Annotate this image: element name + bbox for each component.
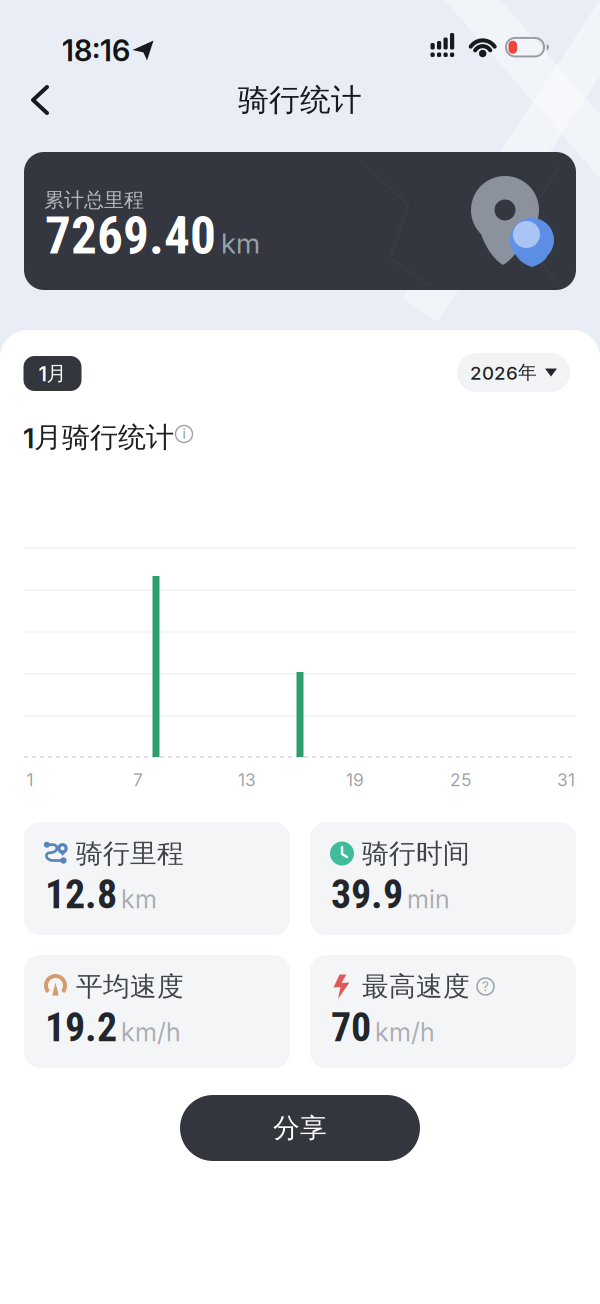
staticText: 累计总里程 bbox=[44, 188, 144, 212]
staticText: 18:16 bbox=[62, 33, 130, 68]
staticText: 39.9 bbox=[331, 871, 403, 918]
staticText: 70 bbox=[331, 1004, 371, 1051]
staticText: 12.8 bbox=[45, 871, 117, 918]
staticText: 19.2 bbox=[45, 1004, 117, 1051]
staticText: km/h bbox=[375, 1017, 435, 1047]
staticText: 1 bbox=[26, 770, 33, 790]
staticText: km/h bbox=[121, 1017, 181, 1047]
staticText: 25 bbox=[450, 770, 472, 790]
button[interactable]: Help bbox=[477, 978, 494, 995]
button[interactable]: 2026年 bbox=[457, 353, 570, 392]
staticText: 2026年 bbox=[470, 361, 537, 384]
button[interactable]: 分享 bbox=[180, 1095, 420, 1161]
staticText: ? bbox=[482, 979, 489, 994]
staticText: 骑行时间 bbox=[362, 837, 470, 870]
staticText: 31 bbox=[557, 770, 575, 790]
staticText: 1月 bbox=[38, 361, 66, 386]
staticText: 分享 bbox=[273, 1112, 327, 1144]
staticText: 骑行里程 bbox=[76, 837, 184, 870]
staticText: km bbox=[121, 884, 157, 914]
staticText: 13 bbox=[238, 770, 256, 790]
staticText: 1月骑行统计 bbox=[23, 420, 174, 455]
staticText: 7 bbox=[133, 770, 143, 790]
staticText: 平均速度 bbox=[76, 970, 184, 1003]
staticText: 7269.40 bbox=[45, 206, 216, 266]
staticText: min bbox=[407, 884, 450, 914]
staticText: i bbox=[182, 426, 185, 442]
staticText: km bbox=[221, 227, 260, 260]
staticText: 骑行统计 bbox=[238, 81, 362, 119]
staticText: 19 bbox=[346, 770, 364, 790]
button[interactable]: 1月 bbox=[23, 356, 81, 391]
staticText: 最高速度 bbox=[362, 970, 470, 1003]
button[interactable]: Info bbox=[175, 425, 192, 442]
